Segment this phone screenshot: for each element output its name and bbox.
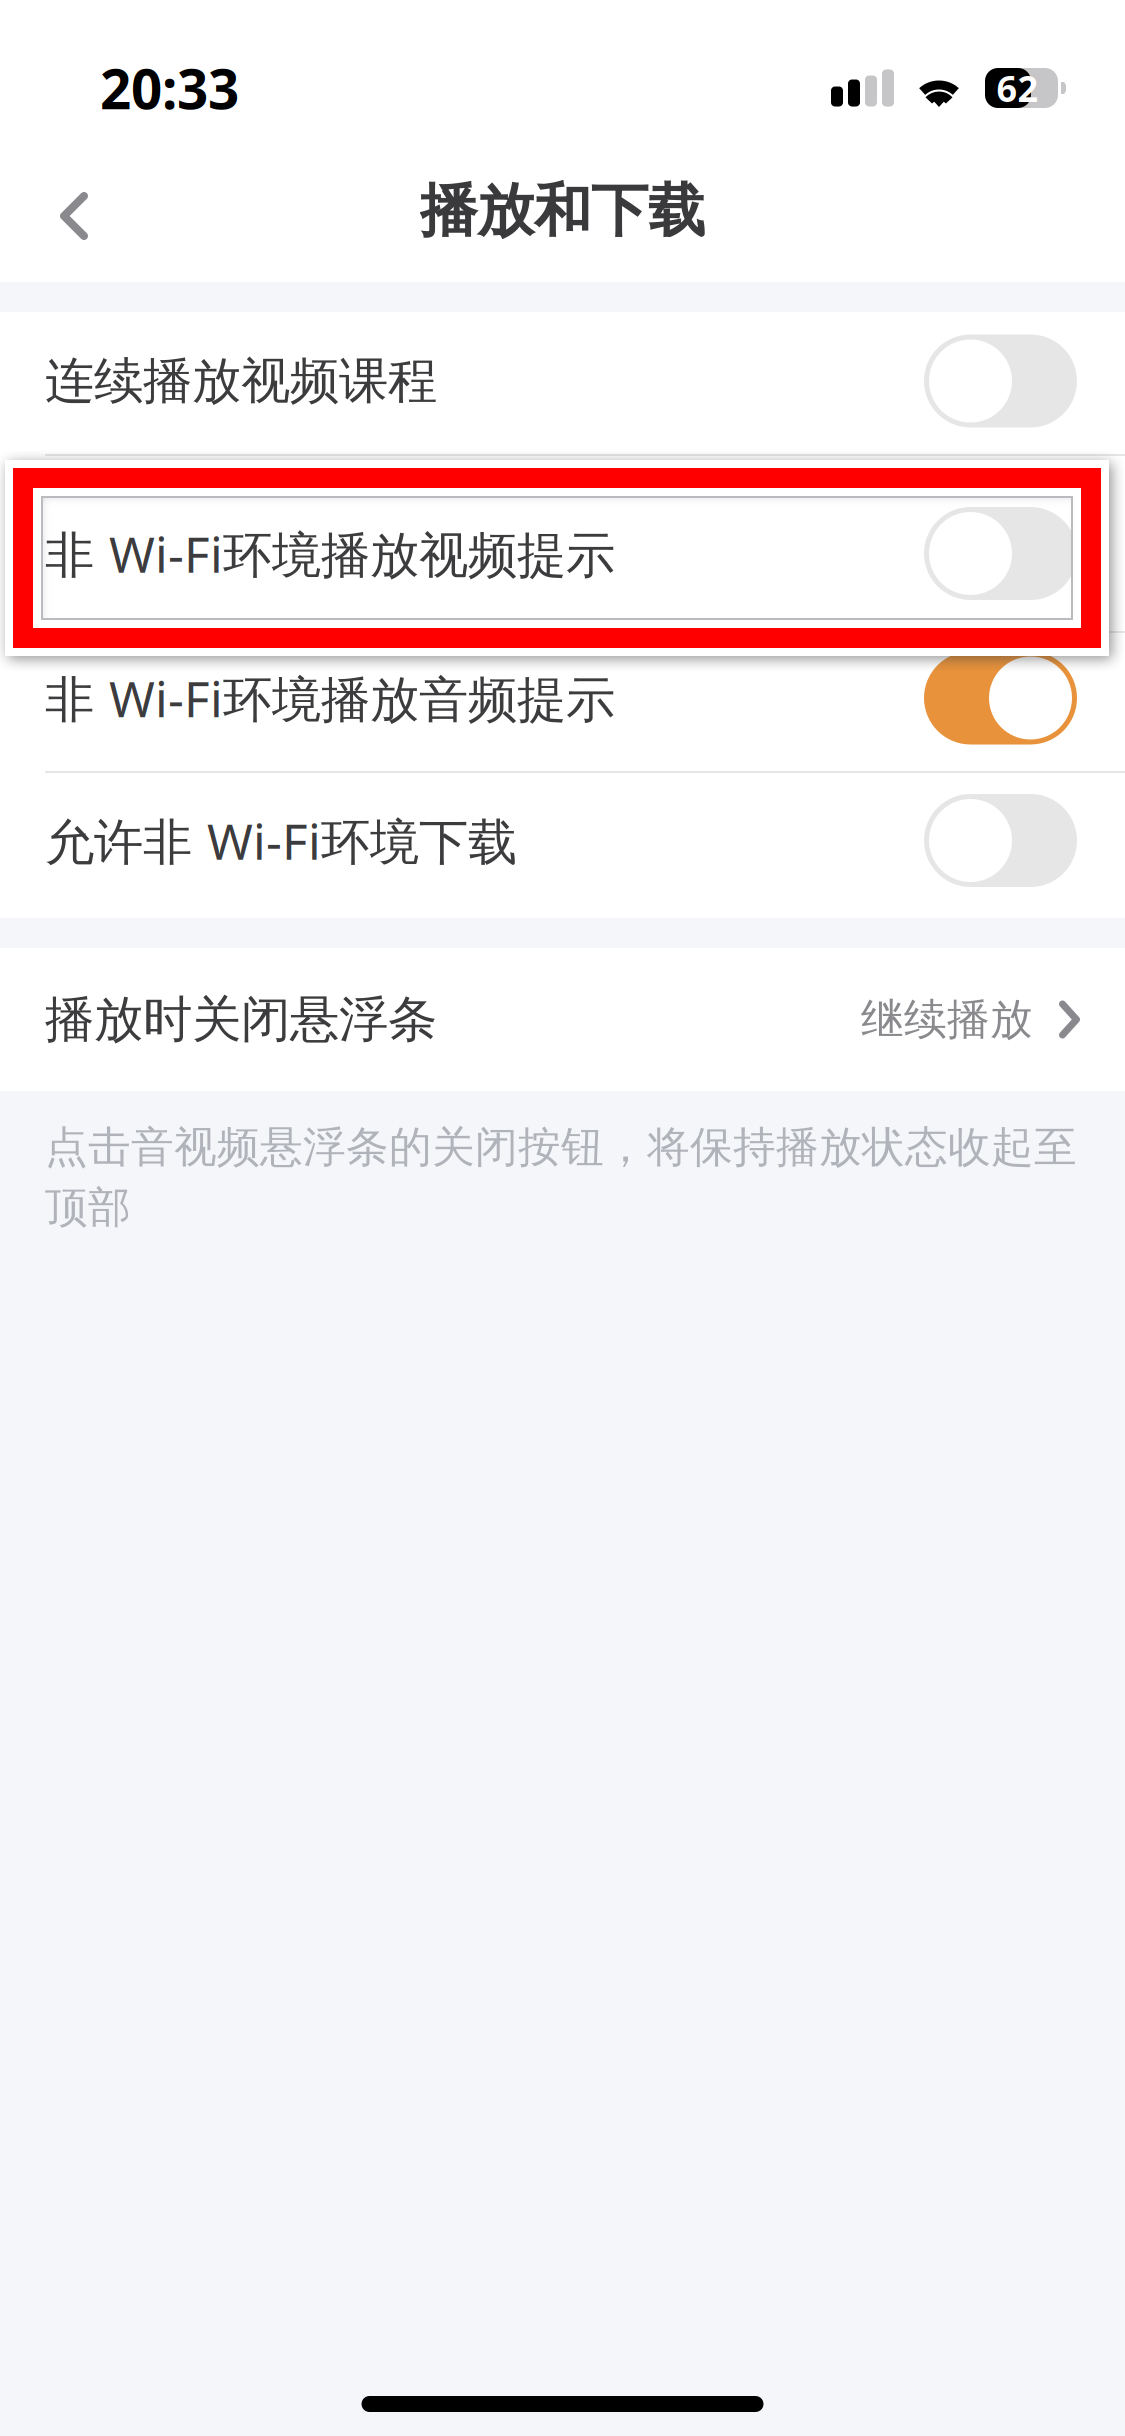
staticText: 非 Wi-Fi环境播放音频提示 [45,665,615,731]
button[interactable]: 允许非 Wi-Fi环境下载 [0,773,1125,918]
button[interactable]: Back [26,163,122,259]
button[interactable]: 播放时关闭悬浮条 [0,948,1125,1091]
staticText: 播放时关闭悬浮条 [45,989,437,1050]
staticText: 点击音视频悬浮条的关闭按钮，将保持播放状态收起至顶部 [45,1121,1077,1234]
staticText: 20:33 [100,52,239,124]
staticText: 继续播放 [861,993,1033,1046]
staticText: 非 Wi-Fi环境播放视频提示 [45,521,615,586]
button[interactable]: 连续播放视频课程 [0,312,1125,454]
staticText: 允许非 Wi-Fi环境下载 [45,808,517,873]
staticText: 播放和下载 [420,176,705,246]
button[interactable]: 非 Wi-Fi环境播放视频提示 [0,456,1125,631]
button[interactable]: 非 Wi-Fi环境播放音频提示 [0,633,1125,771]
staticText: 连续播放视频课程 [45,351,437,411]
staticText: 62 [996,64,1038,112]
